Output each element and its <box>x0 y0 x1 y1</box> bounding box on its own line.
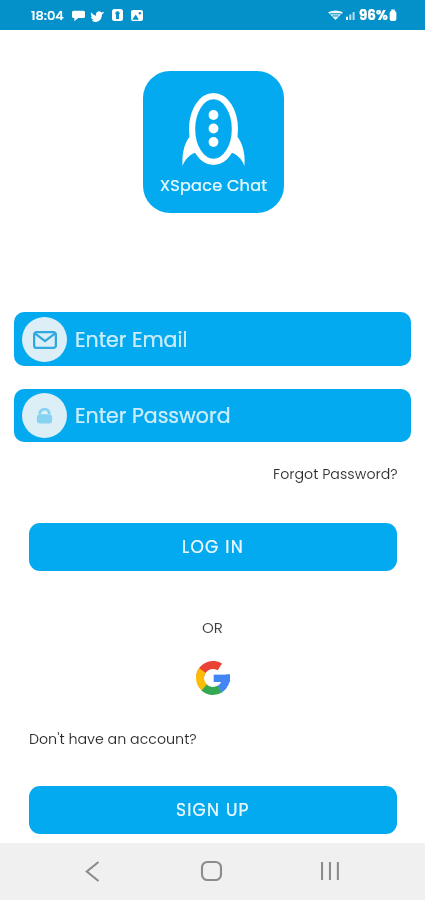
button[interactable]: SIGN UP <box>29 786 397 834</box>
staticText: OR <box>202 617 223 638</box>
button[interactable]: Sign in with Google <box>196 661 230 695</box>
staticText: Don't have an account? <box>29 729 197 749</box>
staticText: 96% <box>359 6 388 25</box>
button[interactable]: Back <box>70 852 115 890</box>
button[interactable]: Enter Email <box>14 312 411 366</box>
button[interactable]: Recent apps <box>307 852 353 890</box>
staticText: Enter Email <box>75 325 188 354</box>
staticText: 18:04 <box>31 6 64 24</box>
staticText: SIGN UP <box>176 798 250 822</box>
button[interactable]: Home <box>188 852 234 890</box>
button[interactable]: LOG IN <box>29 523 397 571</box>
staticText: LOG IN <box>182 535 244 559</box>
staticText: Enter Password <box>75 401 231 430</box>
staticText: XSpace Chat <box>160 174 268 196</box>
button[interactable]: XSpace Chat logo <box>143 71 284 213</box>
staticText: Forgot Password? <box>273 464 398 484</box>
button[interactable]: Enter Password <box>14 389 411 442</box>
